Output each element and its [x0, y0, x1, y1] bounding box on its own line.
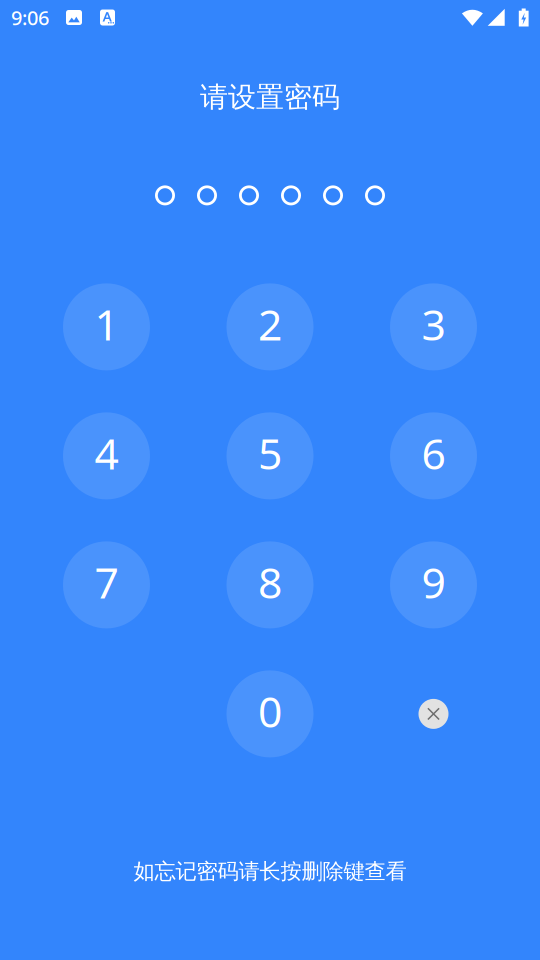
button[interactable]: 3 — [390, 283, 477, 370]
staticText: 7 — [94, 554, 118, 610]
staticText: 6 — [421, 425, 445, 481]
button[interactable]: 6 — [390, 412, 477, 499]
button[interactable]: 1 — [63, 283, 150, 370]
staticText: 1 — [94, 296, 118, 352]
button[interactable]: 9 — [390, 541, 477, 628]
staticText: 如忘记密码请长按删除键查看 — [133, 858, 406, 885]
staticText: 2 — [258, 296, 282, 352]
staticText: 5 — [258, 425, 282, 481]
staticText: 3 — [421, 296, 445, 352]
button[interactable]: Delete — [390, 670, 477, 757]
button[interactable]: 8 — [226, 541, 313, 628]
staticText: 0 — [258, 683, 282, 739]
button[interactable]: 0 — [226, 670, 313, 757]
button[interactable]: 2 — [226, 283, 313, 370]
staticText: 8 — [258, 554, 282, 610]
button[interactable]: 5 — [226, 412, 313, 499]
button[interactable]: 7 — [63, 541, 150, 628]
button[interactable]: 4 — [63, 412, 150, 499]
staticText: 9 — [421, 554, 445, 610]
staticText: 4 — [94, 425, 118, 481]
staticText: 9:06 — [11, 4, 49, 31]
staticText: 请设置密码 — [200, 80, 340, 114]
